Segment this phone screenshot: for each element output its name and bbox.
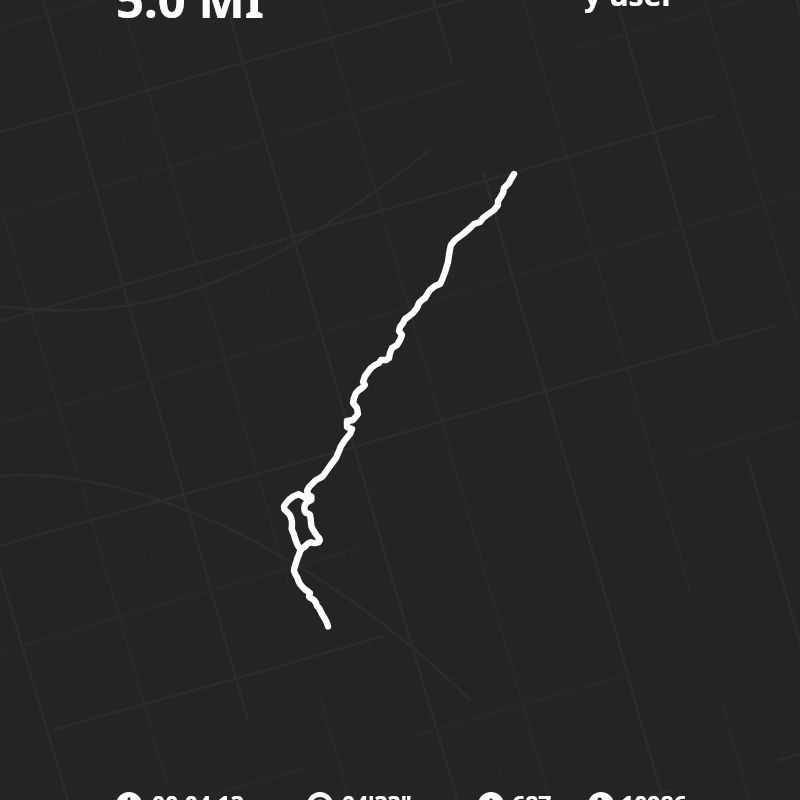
button[interactable]: Duration — [116, 785, 208, 800]
staticText: 00:04:13 — [152, 788, 244, 800]
button[interactable]: Pace — [307, 785, 377, 800]
staticText: 04'33" — [342, 788, 412, 800]
button[interactable]: Route map — [0, 0, 800, 800]
button[interactable]: Calories — [478, 785, 518, 800]
button[interactable]: Steps — [588, 785, 654, 800]
staticText: 10986 — [621, 788, 687, 800]
staticText: 687 — [512, 788, 552, 800]
staticText: y user — [584, 0, 675, 15]
staticText: 5.0 MI — [116, 0, 264, 33]
button[interactable]: 5.0 MI — [116, 0, 264, 33]
button[interactable]: y user — [584, 0, 675, 15]
